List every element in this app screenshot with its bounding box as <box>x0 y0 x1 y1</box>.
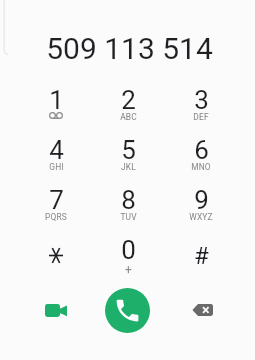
button[interactable]: 0 <box>96 235 160 285</box>
button[interactable]: 3 <box>169 85 233 135</box>
staticText: 5 <box>121 135 136 165</box>
staticText: # <box>194 242 209 270</box>
staticText: 6 <box>194 135 209 165</box>
staticText: JKL <box>121 162 136 172</box>
button[interactable] <box>24 235 88 285</box>
button[interactable]: Video call <box>38 287 74 333</box>
staticText: 2 <box>121 85 136 115</box>
staticText: DEF <box>193 112 209 122</box>
staticText: 0 <box>121 235 136 265</box>
staticText: ABC <box>120 112 137 122</box>
button[interactable]: Backspace <box>184 287 220 333</box>
staticText: PQRS <box>45 212 67 222</box>
staticText: 9 <box>194 185 209 215</box>
button[interactable]: 5 <box>96 135 160 185</box>
staticText: GHI <box>49 162 64 172</box>
button[interactable]: Call <box>105 288 150 333</box>
button[interactable]: # <box>169 235 233 285</box>
staticText: 4 <box>49 135 64 165</box>
staticText: MNO <box>191 162 211 172</box>
staticText: 509 113 514 <box>2 31 255 66</box>
staticText: 3 <box>194 85 209 115</box>
button[interactable]: 6 <box>169 135 233 185</box>
staticText: 8 <box>121 185 136 215</box>
button[interactable]: 9 <box>169 185 233 235</box>
staticText: 1 <box>49 85 64 115</box>
button[interactable]: 2 <box>96 85 160 135</box>
staticText: TUV <box>120 212 137 222</box>
button[interactable]: 1 <box>24 85 88 135</box>
staticText: WXYZ <box>189 212 213 222</box>
staticText: 7 <box>49 185 64 215</box>
button[interactable]: 7 <box>24 185 88 235</box>
button[interactable]: 4 <box>24 135 88 185</box>
button[interactable]: 8 <box>96 185 160 235</box>
staticText: + <box>125 263 132 277</box>
